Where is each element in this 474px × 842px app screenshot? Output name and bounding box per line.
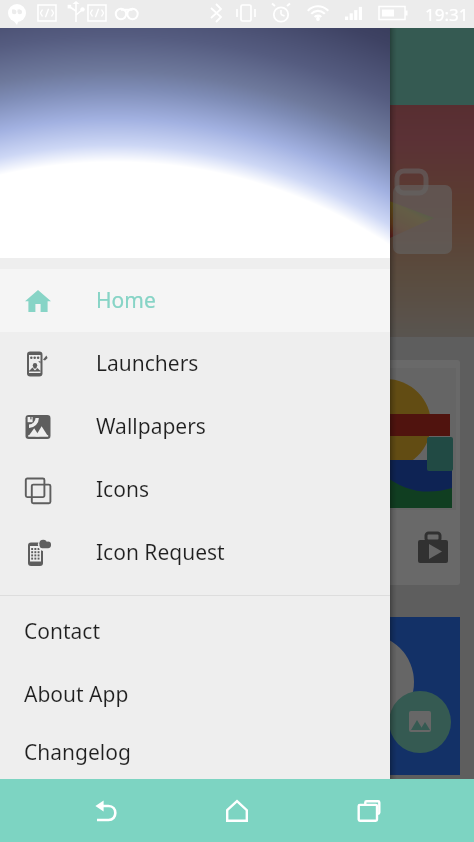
- button[interactable]: Home: [205, 779, 269, 842]
- staticText: Launchers: [96, 349, 199, 378]
- staticText: About App: [24, 680, 129, 709]
- button[interactable]: About App: [0, 663, 390, 726]
- button[interactable]: Home: [0, 269, 390, 332]
- staticText: Icons: [96, 475, 149, 504]
- button[interactable]: Wallpapers: [0, 395, 390, 458]
- button[interactable]: Icons: [0, 458, 390, 521]
- staticText: Wallpapers: [96, 412, 206, 441]
- staticText: Contact: [24, 617, 100, 646]
- button[interactable]: Recents: [337, 779, 401, 842]
- staticText: Icon Request: [96, 538, 225, 567]
- staticText: 19:31: [425, 3, 469, 26]
- button[interactable]: Launchers: [0, 332, 390, 395]
- button[interactable]: Changelog: [0, 726, 390, 779]
- staticText: Changelog: [24, 738, 131, 767]
- button[interactable]: Contact: [0, 600, 390, 663]
- staticText: Home: [96, 286, 156, 315]
- button[interactable]: Icon Request: [0, 521, 390, 584]
- button[interactable]: Back: [74, 779, 138, 842]
